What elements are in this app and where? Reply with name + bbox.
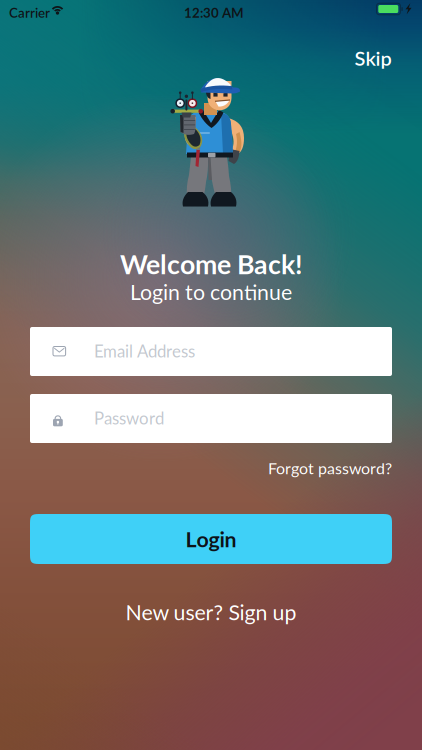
staticText: Skip	[354, 46, 391, 70]
button[interactable]: Email Address	[30, 327, 392, 376]
staticText: Login	[185, 526, 236, 552]
staticText: 12:30 AM	[184, 4, 244, 20]
staticText: Login to continue	[130, 279, 292, 305]
button[interactable]: Forgot password?	[262, 457, 392, 479]
staticText: Welcome Back!	[120, 248, 302, 280]
button[interactable]: Login	[30, 514, 392, 564]
button[interactable]: Skip	[344, 43, 402, 73]
staticText: Email Address	[94, 341, 195, 361]
staticText: Password	[94, 408, 164, 428]
button[interactable]: New user? Sign up	[0, 600, 422, 624]
button[interactable]: Password	[30, 394, 392, 443]
staticText: New user? Sign up	[125, 599, 296, 625]
staticText: Forgot password?	[268, 458, 392, 478]
staticText: Carrier	[9, 4, 50, 20]
